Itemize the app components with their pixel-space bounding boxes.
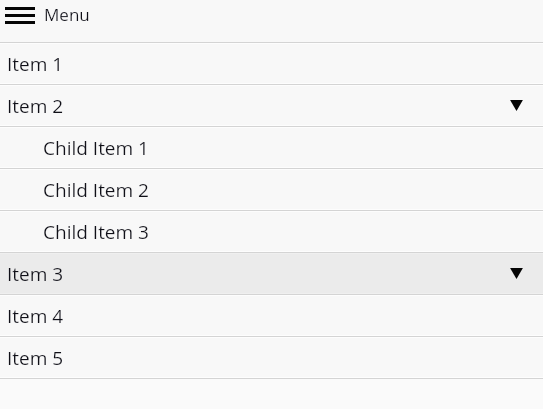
staticText: Child Item 2 <box>43 177 149 203</box>
staticText: Item 3 <box>7 261 64 287</box>
button[interactable]: Open navigation menu <box>0 0 41 28</box>
button[interactable]: Item 5 <box>0 337 543 378</box>
button[interactable]: Child Item 3 <box>0 211 543 252</box>
staticText: Child Item 1 <box>43 135 149 161</box>
button[interactable]: Child Item 1 <box>0 127 543 168</box>
button[interactable]: Item 4 <box>0 295 543 336</box>
button[interactable]: Child Item 2 <box>0 169 543 210</box>
button[interactable]: Item 1 <box>0 43 543 84</box>
staticText: Item 5 <box>7 345 64 371</box>
button[interactable]: Item 3 <box>0 253 543 294</box>
staticText: Item 1 <box>7 51 64 77</box>
staticText: Item 2 <box>7 93 64 119</box>
button[interactable]: Expand Item 3 <box>496 254 537 293</box>
button[interactable]: Item 2 <box>0 85 543 126</box>
staticText: Child Item 3 <box>43 219 149 245</box>
staticText: Item 4 <box>7 303 64 329</box>
button[interactable]: Expand Item 2 <box>496 86 537 125</box>
staticText: Menu <box>44 3 90 26</box>
